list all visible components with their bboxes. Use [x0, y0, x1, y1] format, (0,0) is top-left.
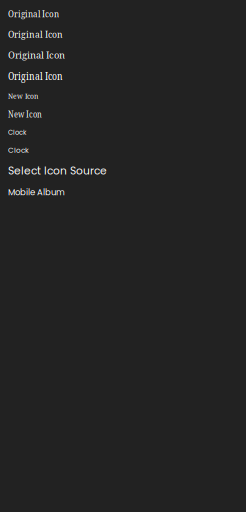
staticText: New Icon — [8, 91, 38, 101]
staticText: Original Icon — [8, 8, 59, 20]
staticText: Clock — [8, 128, 26, 137]
staticText: Original Icon — [8, 48, 65, 61]
staticText: Original Icon — [8, 28, 63, 40]
staticText: Clock — [8, 145, 29, 155]
staticText: Original Icon — [8, 69, 63, 83]
staticText: Select Icon Source — [8, 163, 107, 178]
staticText: New Icon — [8, 109, 42, 120]
staticText: Mobile Album — [8, 186, 65, 198]
